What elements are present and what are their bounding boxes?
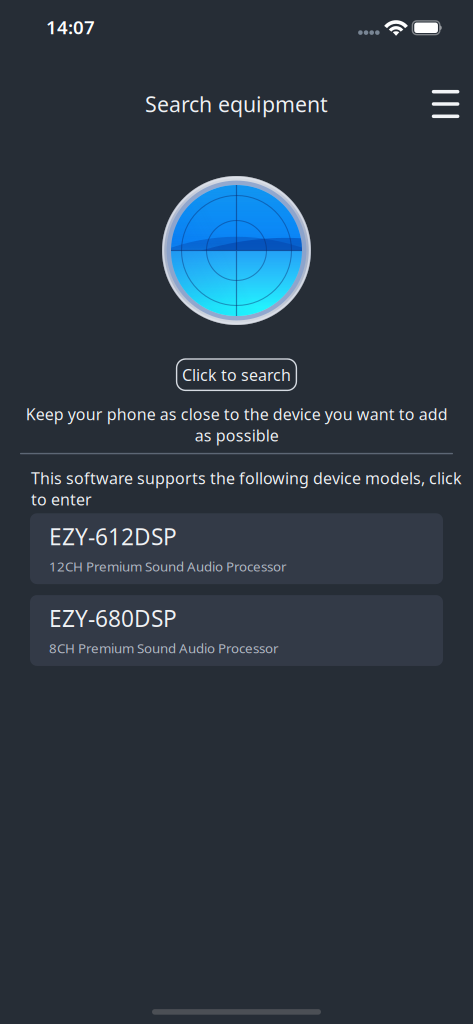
staticText: 12CH Premium Sound Audio Processor	[49, 557, 287, 575]
staticText: EZY-680DSP	[49, 603, 177, 633]
staticText: Search equipment	[145, 90, 328, 118]
button[interactable]: Click to search	[177, 359, 296, 390]
staticText: Keep your phone as close to the device y…	[25, 403, 447, 446]
button[interactable]: EZY-612DSP	[30, 513, 443, 584]
staticText: EZY-612DSP	[49, 521, 177, 551]
staticText: Click to search	[182, 364, 291, 385]
staticText: 14:07	[46, 15, 95, 39]
staticText: This software supports the following dev…	[31, 467, 462, 510]
button[interactable]: Menu	[418, 78, 459, 130]
button[interactable]: EZY-680DSP	[30, 595, 443, 666]
staticText: 8CH Premium Sound Audio Processor	[49, 639, 279, 657]
